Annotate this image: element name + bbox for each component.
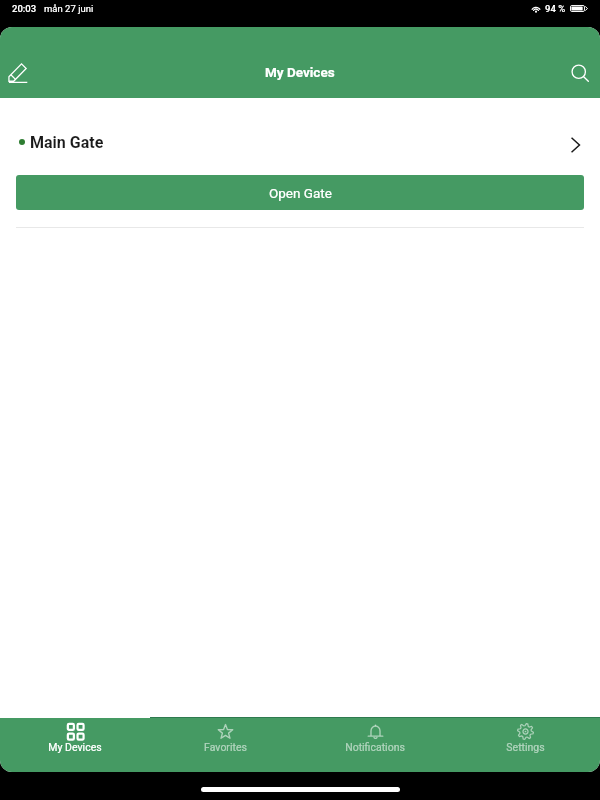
staticText: 94 % bbox=[545, 3, 566, 14]
button[interactable]: Main Gate bbox=[0, 110, 600, 175]
button[interactable]: Settings bbox=[450, 717, 600, 772]
button[interactable]: Favorites bbox=[150, 717, 300, 772]
staticText: mån 27 juni bbox=[44, 3, 94, 14]
staticText: Settings bbox=[506, 741, 545, 753]
staticText: My Devices bbox=[265, 64, 335, 80]
staticText: Open Gate bbox=[269, 185, 332, 201]
staticText: Main Gate bbox=[30, 133, 104, 152]
button[interactable]: Search bbox=[562, 55, 597, 90]
staticText: Notifications bbox=[345, 741, 405, 753]
button[interactable]: My Devices bbox=[0, 717, 150, 772]
button[interactable]: Notifications bbox=[300, 717, 450, 772]
button[interactable]: Open Gate bbox=[16, 175, 584, 210]
button[interactable]: Edit bbox=[0, 55, 35, 90]
staticText: Favorites bbox=[204, 741, 247, 753]
staticText: My Devices bbox=[48, 741, 102, 753]
staticText: 20:03 bbox=[12, 3, 37, 14]
